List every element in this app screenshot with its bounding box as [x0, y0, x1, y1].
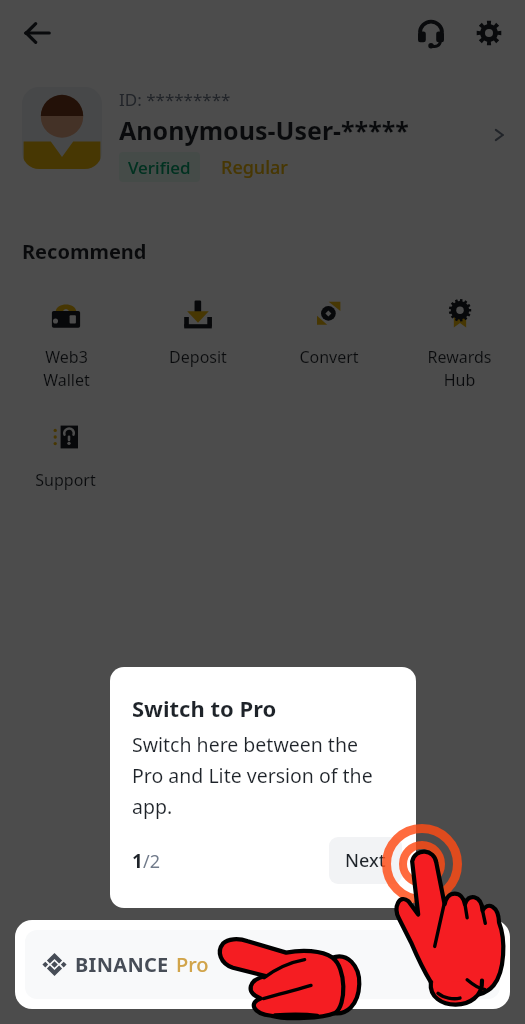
staticText: /2: [143, 849, 160, 874]
button[interactable]: Rewards Hub: [394, 295, 525, 394]
staticText: Switch to Pro: [132, 693, 277, 723]
button[interactable]: ID: *********: [0, 88, 525, 182]
button[interactable]: Deposit: [132, 295, 263, 372]
staticText: Verified: [128, 156, 191, 178]
staticText: Deposit: [169, 346, 227, 368]
button[interactable]: BINANCE: [25, 930, 500, 999]
staticText: Rewards Hub: [427, 346, 492, 390]
staticText: ID: *********: [119, 88, 231, 111]
staticText: Anonymous-User-*****: [119, 113, 409, 147]
button[interactable]: Next: [329, 837, 402, 884]
staticText: 1: [132, 848, 143, 874]
staticText: Convert: [299, 346, 359, 368]
button[interactable]: Settings: [466, 10, 511, 55]
staticText: Regular: [221, 155, 288, 180]
staticText: Support: [35, 469, 96, 491]
button[interactable]: Convert: [263, 295, 394, 372]
staticText: BINANCE: [75, 951, 169, 978]
button[interactable]: Support: [0, 418, 131, 495]
staticText: Next: [345, 848, 386, 873]
staticText: Web3 Wallet: [43, 346, 90, 390]
button[interactable]: Back: [13, 9, 60, 56]
staticText: Recommend: [22, 238, 147, 265]
button[interactable]: Web3 Wallet: [0, 295, 132, 394]
staticText: Pro: [176, 951, 209, 978]
button[interactable]: Customer support: [408, 10, 453, 55]
staticText: Switch here between the Pro and Lite ver…: [132, 731, 373, 820]
